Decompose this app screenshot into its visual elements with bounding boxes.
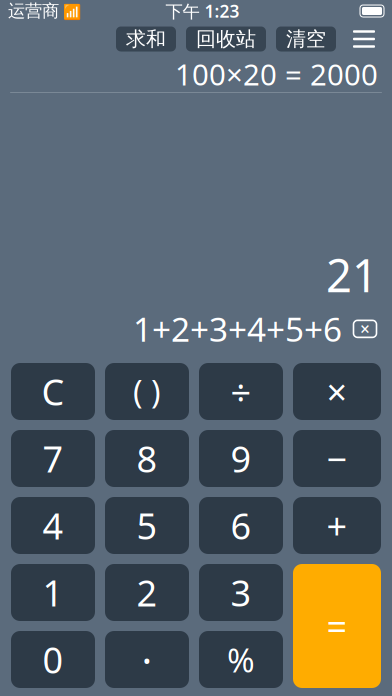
button[interactable]: 7	[11, 430, 95, 487]
staticText: =	[326, 602, 347, 650]
button[interactable]: ·	[105, 631, 189, 688]
staticText: 2	[136, 569, 157, 616]
staticText: 5	[136, 502, 157, 549]
staticText: ( )	[133, 370, 161, 413]
button[interactable]: +	[293, 497, 381, 554]
staticText: ×	[360, 317, 370, 340]
staticText: 清空	[286, 27, 326, 51]
staticText: 9	[230, 435, 251, 482]
staticText: 运营商	[8, 0, 59, 22]
staticText: ·	[141, 633, 152, 686]
button[interactable]: ÷	[199, 363, 283, 420]
staticText: ÷	[230, 368, 251, 415]
button[interactable]: =	[293, 564, 381, 688]
staticText: 求和	[126, 27, 166, 51]
button[interactable]: %	[199, 631, 283, 688]
staticText: %	[227, 637, 255, 682]
staticText: 1	[42, 569, 63, 616]
staticText: 6	[230, 502, 251, 549]
staticText: C	[41, 368, 64, 415]
button[interactable]: 8	[105, 430, 189, 487]
button[interactable]: 回收站	[186, 26, 266, 51]
staticText: 0	[42, 636, 63, 683]
button[interactable]: ( )	[105, 363, 189, 420]
staticText: 4	[42, 502, 63, 549]
staticText: 21	[326, 244, 378, 305]
staticText: 8	[136, 435, 157, 482]
staticText: 7	[42, 435, 63, 482]
button[interactable]: C	[11, 363, 95, 420]
staticText: −	[326, 435, 347, 482]
button[interactable]: −	[293, 430, 381, 487]
button[interactable]: Menu	[346, 24, 382, 54]
button[interactable]: 6	[199, 497, 283, 554]
button[interactable]: 1	[11, 564, 95, 621]
button[interactable]: 清空	[276, 26, 336, 51]
staticText: +	[326, 502, 347, 549]
button[interactable]: 4	[11, 497, 95, 554]
button[interactable]: 9	[199, 430, 283, 487]
button[interactable]: 求和	[116, 26, 176, 51]
staticText: 3	[230, 569, 251, 616]
staticText: 回收站	[196, 27, 256, 51]
button[interactable]: 0	[11, 631, 95, 688]
button[interactable]: 3	[199, 564, 283, 621]
button[interactable]: 5	[105, 497, 189, 554]
button[interactable]: ×	[293, 363, 381, 420]
staticText: 100×20 = 2000	[175, 54, 378, 93]
staticText: ×	[326, 368, 347, 415]
staticText: 下午 1:23	[165, 0, 239, 22]
button[interactable]: Delete	[350, 316, 380, 342]
staticText: 1+2+3+4+5+6	[133, 307, 342, 351]
button[interactable]: 2	[105, 564, 189, 621]
staticText: 📶	[59, 1, 81, 21]
